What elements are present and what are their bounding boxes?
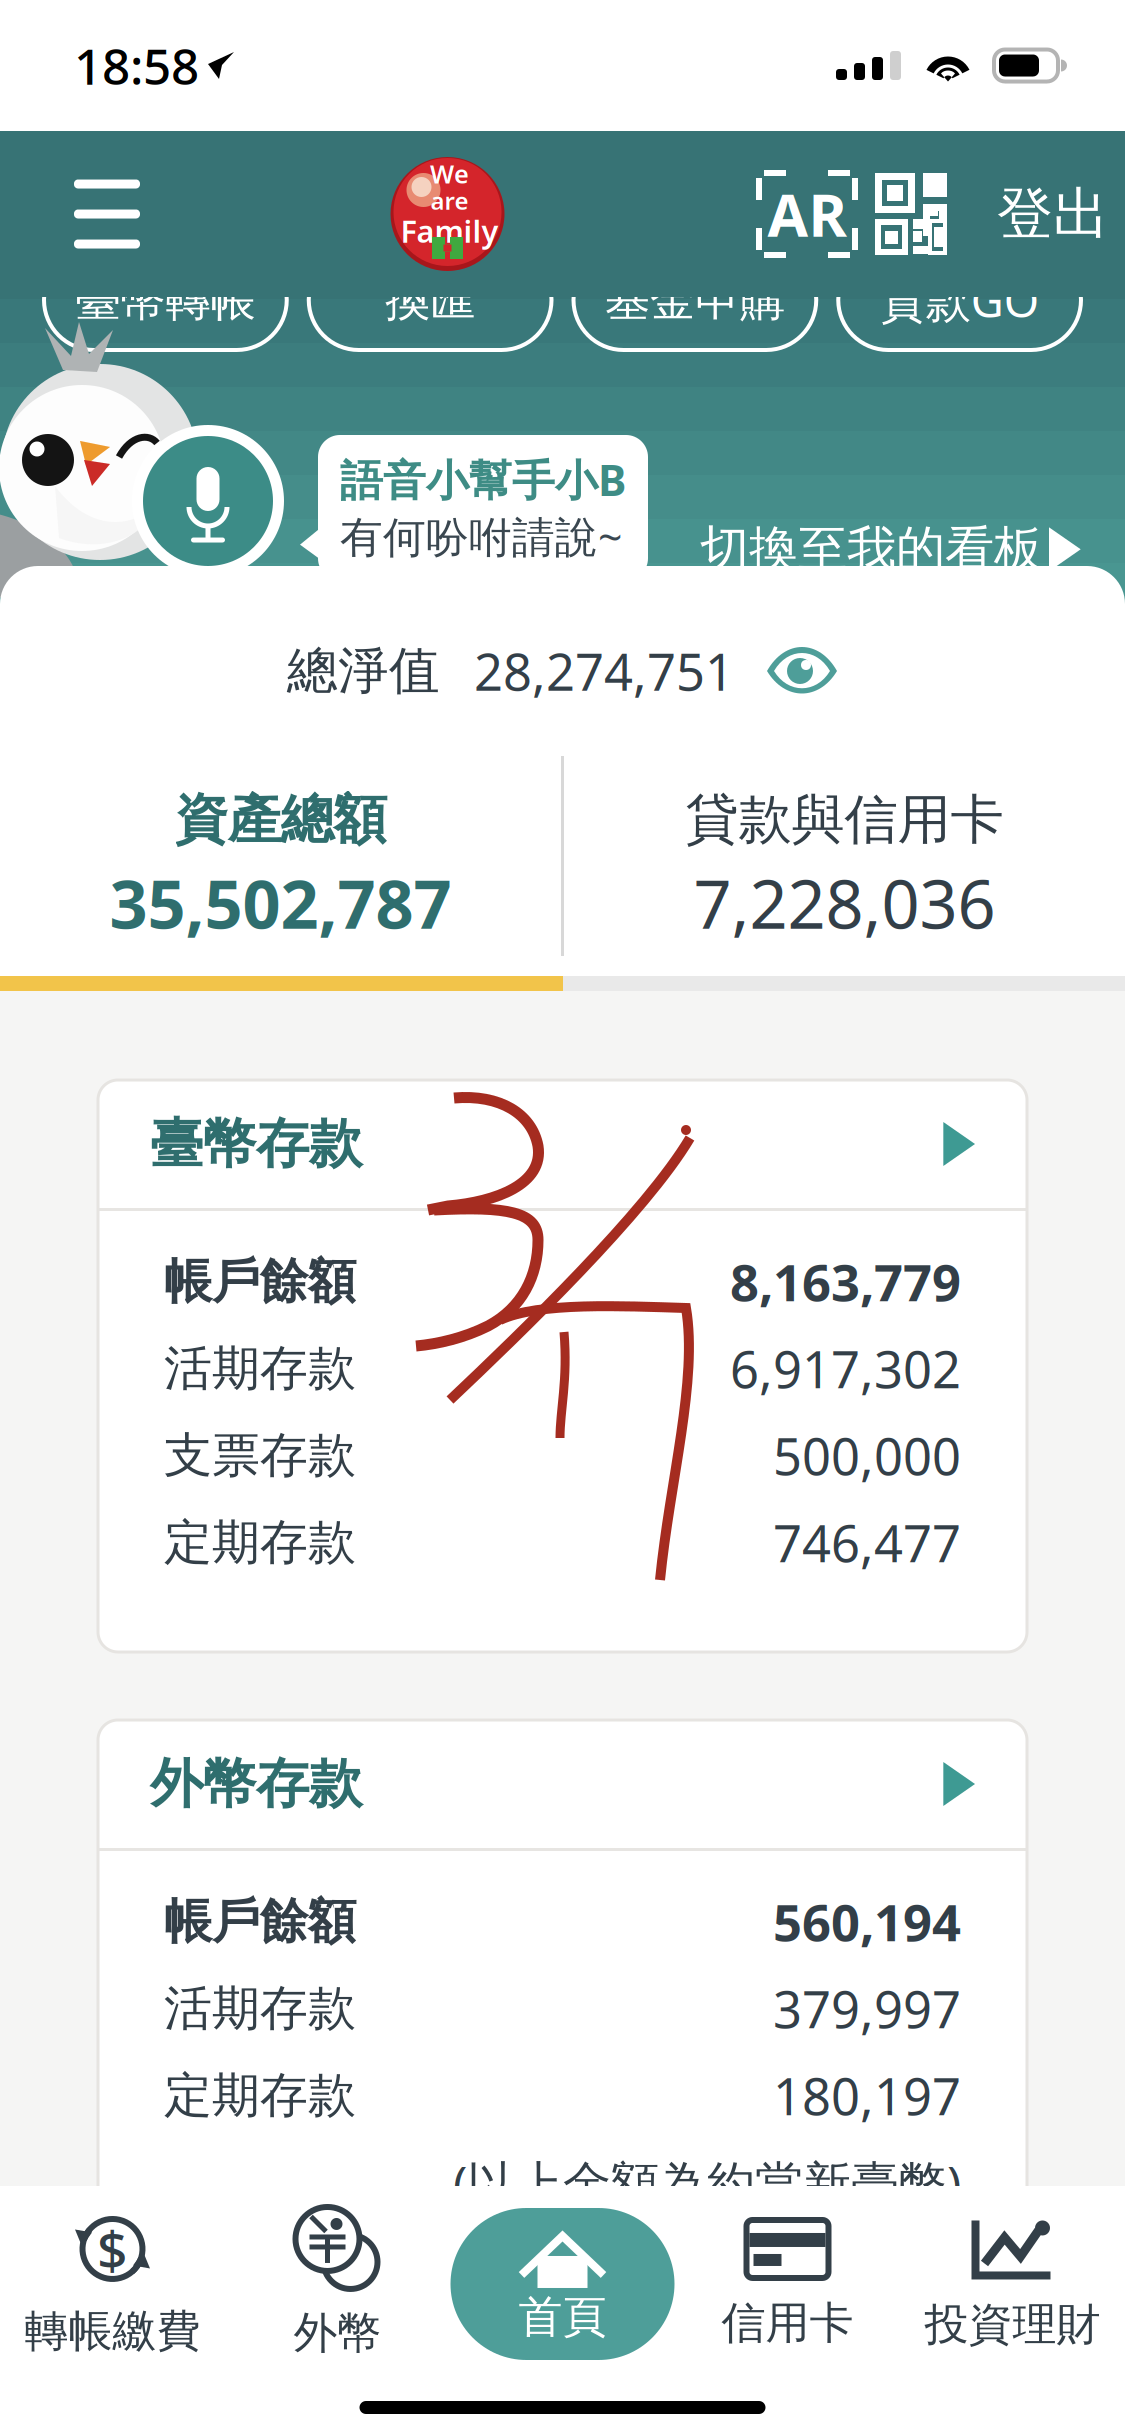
button[interactable]: Hide balance	[734, 647, 838, 695]
button[interactable]: 信用卡	[675, 2186, 900, 2382]
staticText: 18:58	[74, 33, 199, 98]
staticText: 登出	[997, 180, 1109, 248]
staticText: 746,477	[773, 1509, 961, 1576]
button[interactable]: 臺幣存款	[98, 1080, 1027, 1208]
staticText: $	[97, 2214, 128, 2284]
button[interactable]: 換匯	[309, 250, 552, 350]
button[interactable]: 基金申購	[573, 250, 816, 350]
button[interactable]: 投資理財	[900, 2186, 1125, 2382]
button[interactable]: 貸款GO	[838, 250, 1081, 350]
staticText: 活期存款	[164, 1979, 356, 2038]
staticText: 7,228,036	[693, 858, 995, 947]
staticText: 500,000	[773, 1422, 961, 1489]
staticText: 外幣	[293, 2306, 381, 2360]
staticText: 語音小幫手小B	[340, 451, 626, 508]
staticText: 28,274,751	[474, 637, 734, 705]
staticText: 資產總額	[174, 787, 386, 852]
staticText: 切換至我的看板	[700, 519, 1043, 580]
button[interactable]: Voice assistant	[130, 423, 286, 579]
staticText: 定期存款	[164, 1513, 356, 1572]
button[interactable]: AR	[755, 164, 859, 264]
button[interactable]: $	[0, 2186, 225, 2382]
staticText: 35,502,787	[109, 858, 451, 947]
button[interactable]: Menu	[74, 158, 140, 270]
staticText: 轉帳繳費	[24, 2304, 200, 2358]
staticText: 投資理財	[924, 2297, 1100, 2351]
button[interactable]: 首頁	[450, 2186, 675, 2382]
staticText: are	[430, 184, 468, 216]
staticText: 貸款與信用卡	[685, 787, 1003, 852]
staticText: 560,194	[773, 1888, 961, 1955]
staticText: 信用卡	[721, 2296, 853, 2350]
staticText: 180,197	[773, 2062, 961, 2129]
staticText: 6,917,302	[730, 1335, 961, 1402]
staticText: AR	[767, 175, 846, 253]
button[interactable]: We are Family	[388, 155, 506, 273]
button[interactable]: QR Code	[859, 164, 963, 264]
staticText: 支票存款	[164, 1426, 356, 1485]
staticText: 外幣存款	[150, 1751, 362, 1817]
staticText: 貸款GO	[881, 270, 1039, 330]
button[interactable]: 外幣存款	[98, 1720, 1027, 1848]
staticText: 首頁	[518, 2290, 606, 2344]
staticText: 定期存款	[164, 2066, 356, 2125]
staticText: 活期存款	[164, 1339, 356, 1398]
staticText: Family	[400, 210, 498, 251]
staticText: 臺幣轉帳	[75, 272, 255, 328]
staticText: 總淨值	[287, 640, 440, 702]
staticText: 帳戶餘額	[164, 1252, 356, 1311]
staticText: 帳戶餘額	[164, 1892, 356, 1951]
button[interactable]: 外幣	[225, 2186, 450, 2382]
staticText: 8,163,779	[730, 1248, 961, 1315]
staticText: 基金申購	[605, 272, 785, 328]
button[interactable]: 切換至我的看板	[700, 505, 1081, 594]
staticText: 換匯	[385, 272, 475, 328]
staticText: We	[430, 157, 469, 190]
staticText: 臺幣存款	[150, 1111, 362, 1177]
button[interactable]: 登出	[963, 158, 1113, 270]
staticText: (以上金額為約當新臺幣)	[453, 2151, 961, 2214]
staticText: 379,997	[773, 1975, 961, 2042]
button[interactable]: 臺幣轉帳	[44, 250, 287, 350]
staticText: 有何吩咐請說~	[340, 508, 622, 564]
